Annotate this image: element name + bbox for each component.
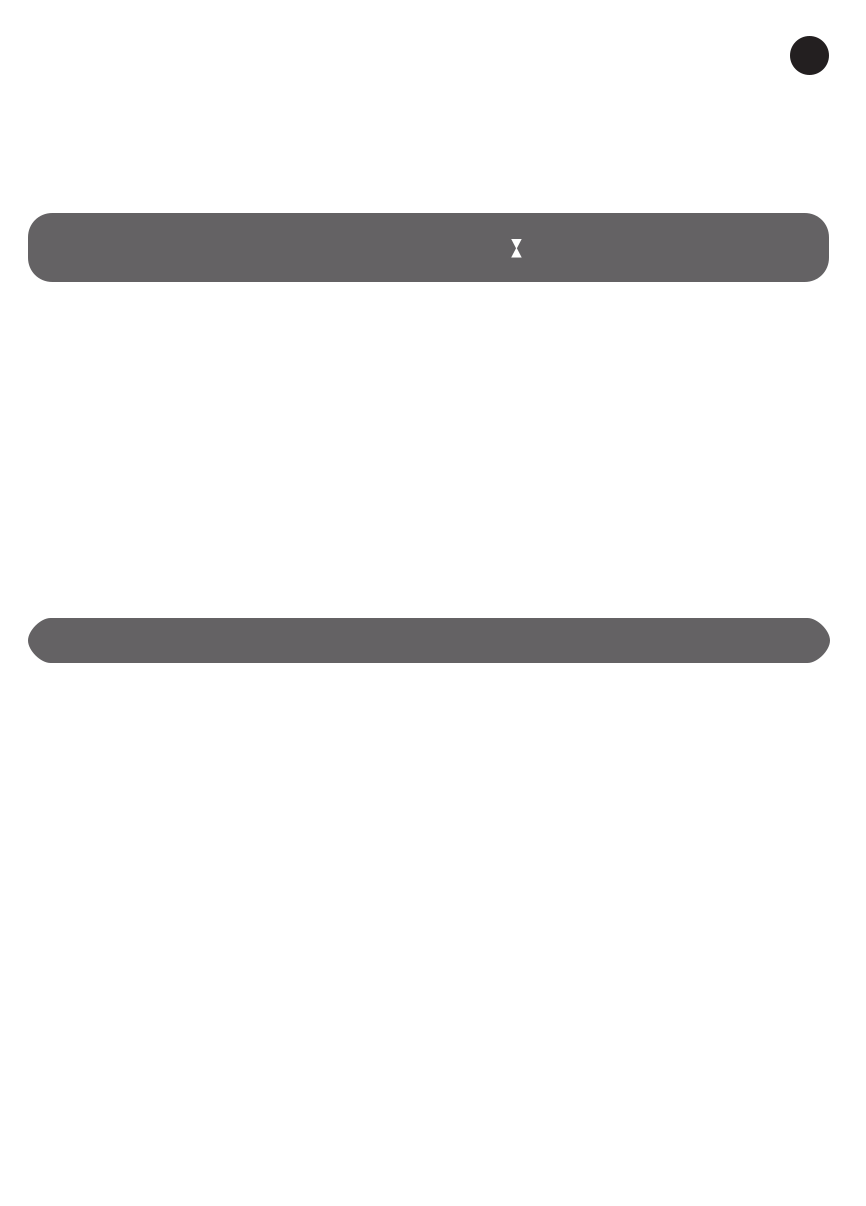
button[interactable]: Loading [28, 618, 830, 663]
button[interactable]: Working [28, 213, 829, 282]
button[interactable]: Account [790, 36, 829, 75]
